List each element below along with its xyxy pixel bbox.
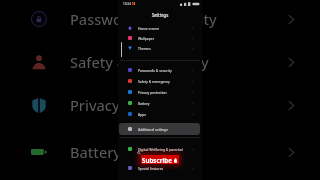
staticText: Passwords & security [70, 9, 217, 29]
staticText: Digital Wellbeing & parental [138, 147, 183, 152]
staticText: Privacy protection [138, 90, 167, 95]
button[interactable]: Safety & emergency [0, 46, 320, 78]
staticText: Wallpaper [138, 36, 155, 41]
staticText: Battery [70, 142, 121, 162]
button[interactable]: Wallpaper [119, 32, 200, 44]
staticText: Home screen [138, 26, 160, 31]
other: Open Battery [286, 147, 297, 158]
staticText: Passwords & security [138, 68, 172, 73]
staticText: Subscribe [142, 156, 172, 164]
button[interactable]: Digital Wellbeing & parental [119, 143, 200, 155]
staticText: Safety & emergency [138, 79, 170, 84]
button[interactable]: Passwords & security [0, 3, 320, 35]
button[interactable]: Privacy protection [0, 89, 320, 121]
button[interactable]: Safety & emergency [119, 75, 200, 87]
staticText: Special features [138, 166, 164, 171]
button[interactable]: Additional settings [119, 123, 200, 135]
staticText: Safety & emergency [70, 52, 209, 72]
button[interactable]: Themes [119, 42, 200, 54]
button[interactable]: Battery [0, 136, 320, 168]
staticText: Privacy protection [70, 95, 196, 115]
button[interactable]: Subscribe [141, 155, 179, 164]
button[interactable]: Home screen [119, 22, 200, 34]
staticText: Battery [138, 101, 150, 106]
other: Open Safety & emergency [286, 57, 297, 68]
staticText: 12:34 [123, 2, 131, 6]
staticText: Additional settings [138, 127, 168, 132]
button[interactable]: Battery [119, 97, 200, 109]
other: Open Privacy protection [286, 100, 297, 111]
staticText: Apps [138, 112, 146, 117]
button[interactable]: Apps [119, 108, 200, 120]
button[interactable]: Passwords & security [119, 64, 200, 76]
staticText: Settings [118, 12, 202, 18]
other: Open Passwords & security [286, 14, 297, 25]
button[interactable]: Privacy protection [119, 86, 200, 98]
staticText: Themes [138, 46, 151, 51]
button[interactable]: Special features [119, 162, 200, 174]
